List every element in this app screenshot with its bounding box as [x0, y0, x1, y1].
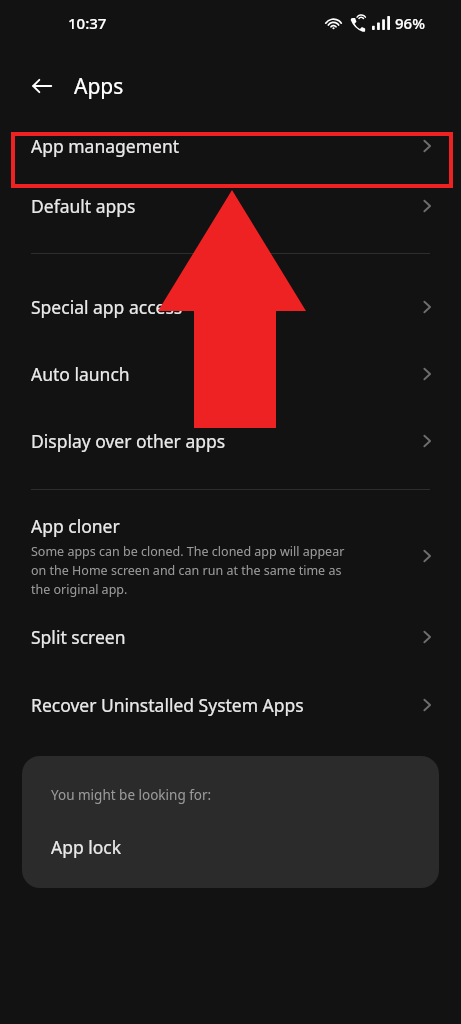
button[interactable]: Special app access	[0, 273, 461, 340]
staticText: App lock	[51, 835, 122, 859]
staticText: Some apps can be cloned. The cloned app …	[31, 543, 345, 598]
button[interactable]: Recover Uninstalled System Apps	[0, 671, 461, 738]
button[interactable]: You might be looking for:	[22, 756, 439, 888]
staticText: Default apps	[31, 194, 136, 218]
staticText: App management	[31, 134, 180, 158]
staticText: You might be looking for:	[51, 786, 212, 804]
staticText: Apps	[74, 72, 124, 101]
staticText: Auto launch	[31, 362, 130, 386]
staticText: 96%	[395, 13, 425, 33]
staticText: Recover Uninstalled System Apps	[31, 693, 304, 717]
button[interactable]: Default apps	[0, 172, 461, 239]
button[interactable]: Auto launch	[0, 340, 461, 407]
staticText: Split screen	[31, 625, 126, 649]
button[interactable]: Split screen	[0, 603, 461, 671]
staticText: Special app access	[31, 295, 183, 319]
staticText: 10:37	[68, 13, 107, 33]
button[interactable]: Back	[22, 66, 62, 106]
staticText: Display over other apps	[31, 429, 226, 453]
button[interactable]: Display over other apps	[0, 407, 461, 474]
staticText: App cloner	[31, 514, 120, 538]
button[interactable]: App cloner	[0, 508, 461, 603]
button[interactable]: App management	[0, 120, 461, 172]
